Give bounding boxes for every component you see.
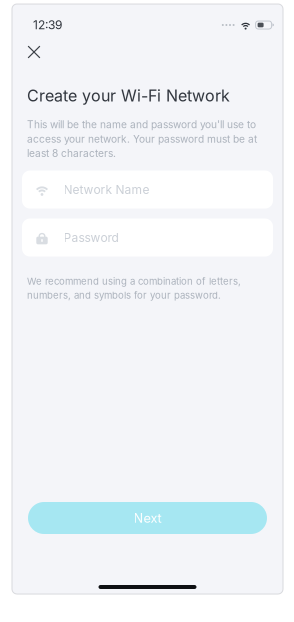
staticText: Next: [133, 510, 161, 526]
staticText: Create your Wi-Fi Network: [27, 86, 230, 105]
staticText: Password: [63, 230, 118, 245]
staticText: We recommend using a combination of lett…: [27, 275, 241, 301]
staticText: Network Name: [63, 182, 149, 197]
button[interactable]: Next: [28, 502, 267, 534]
staticText: This will be the name and password you'l…: [27, 118, 257, 160]
button[interactable]: Close: [21, 39, 47, 65]
staticText: 12:39: [33, 18, 62, 32]
